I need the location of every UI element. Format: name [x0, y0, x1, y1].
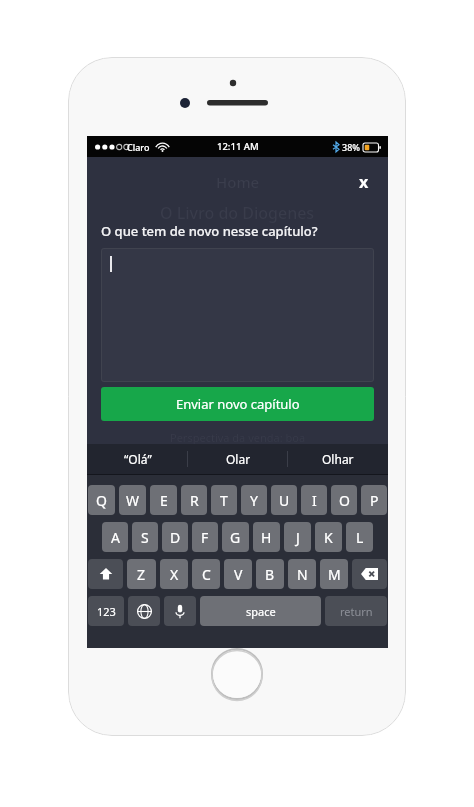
button[interactable]: Olar	[188, 444, 288, 474]
button[interactable]	[101, 248, 374, 382]
staticText: S	[141, 528, 149, 547]
staticText: Claro	[127, 141, 150, 153]
button[interactable]: T	[211, 485, 237, 515]
button[interactable]: space	[200, 596, 321, 626]
staticText: 12:11 AM	[217, 140, 259, 153]
button[interactable]: I	[301, 485, 327, 515]
staticText: T	[220, 491, 228, 510]
staticText: I	[312, 491, 317, 510]
staticText: C	[202, 565, 211, 584]
button[interactable]: 123	[88, 596, 124, 626]
button[interactable]: Dictation	[164, 596, 196, 626]
button[interactable]: E	[150, 485, 177, 515]
staticText: G	[230, 528, 241, 547]
staticText: 38%	[342, 141, 360, 153]
button[interactable]: return	[325, 596, 387, 626]
staticText: x	[359, 171, 369, 193]
button[interactable]: H	[253, 522, 280, 552]
staticText: A	[111, 528, 120, 547]
button[interactable]: X	[160, 559, 188, 589]
button[interactable]: L	[346, 522, 373, 552]
button[interactable]: M	[320, 559, 348, 589]
button[interactable]: Olhar	[288, 444, 388, 474]
staticText: O Livro do Diogenes	[160, 202, 315, 224]
staticText: space	[246, 604, 276, 619]
staticText: Q	[96, 491, 107, 510]
button[interactable]: N	[288, 559, 316, 589]
button[interactable]: Y	[241, 485, 267, 515]
staticText: return	[340, 604, 373, 619]
button[interactable]: W	[119, 485, 146, 515]
button[interactable]: R	[181, 485, 207, 515]
staticText: U	[279, 491, 290, 510]
staticText: Z	[137, 565, 146, 584]
button[interactable]: Shift	[88, 559, 123, 589]
staticText: Olhar	[322, 451, 354, 467]
staticText: O que tem de novo nesse capítulo?	[101, 222, 318, 240]
staticText: X	[170, 565, 179, 584]
button[interactable]: Backspace	[352, 559, 387, 589]
button[interactable]: U	[271, 485, 297, 515]
button[interactable]: C	[192, 559, 220, 589]
staticText: D	[170, 528, 181, 547]
button[interactable]: Z	[127, 559, 156, 589]
button[interactable]: Q	[88, 485, 115, 515]
button[interactable]: K	[315, 522, 342, 552]
button[interactable]: O	[331, 485, 357, 515]
button[interactable]: J	[284, 522, 311, 552]
staticText: Y	[250, 491, 258, 510]
staticText: Home	[216, 172, 260, 192]
staticText: Olar	[226, 451, 251, 467]
button[interactable]: F	[192, 522, 218, 552]
button[interactable]: P	[361, 485, 387, 515]
staticText: M	[328, 565, 341, 584]
button[interactable]: G	[222, 522, 249, 552]
staticText: E	[160, 491, 168, 510]
staticText: B	[265, 565, 275, 584]
button[interactable]: Enviar novo capítulo	[101, 387, 374, 421]
staticText: H	[261, 528, 272, 547]
button[interactable]: B	[256, 559, 284, 589]
button[interactable]: S	[132, 522, 158, 552]
staticText: L	[356, 528, 364, 547]
button[interactable]: Change keyboard	[128, 596, 160, 626]
staticText: O	[339, 491, 350, 510]
staticText: Perspectiva da venda: boa	[170, 430, 306, 445]
staticText: Enviar novo capítulo	[176, 395, 300, 413]
staticText: J	[296, 528, 300, 547]
button[interactable]: Close	[348, 166, 380, 198]
staticText: W	[126, 491, 140, 510]
button[interactable]: “Olá”	[87, 444, 188, 474]
staticText: 123	[97, 604, 116, 619]
button[interactable]: V	[224, 559, 252, 589]
button[interactable]: D	[162, 522, 188, 552]
staticText: N	[297, 565, 308, 584]
staticText: “Olá”	[124, 451, 152, 467]
button[interactable]: A	[102, 522, 128, 552]
staticText: R	[190, 491, 199, 510]
staticText: F	[201, 528, 209, 547]
staticText: V	[234, 565, 243, 584]
staticText: P	[370, 491, 379, 510]
staticText: K	[324, 528, 333, 547]
